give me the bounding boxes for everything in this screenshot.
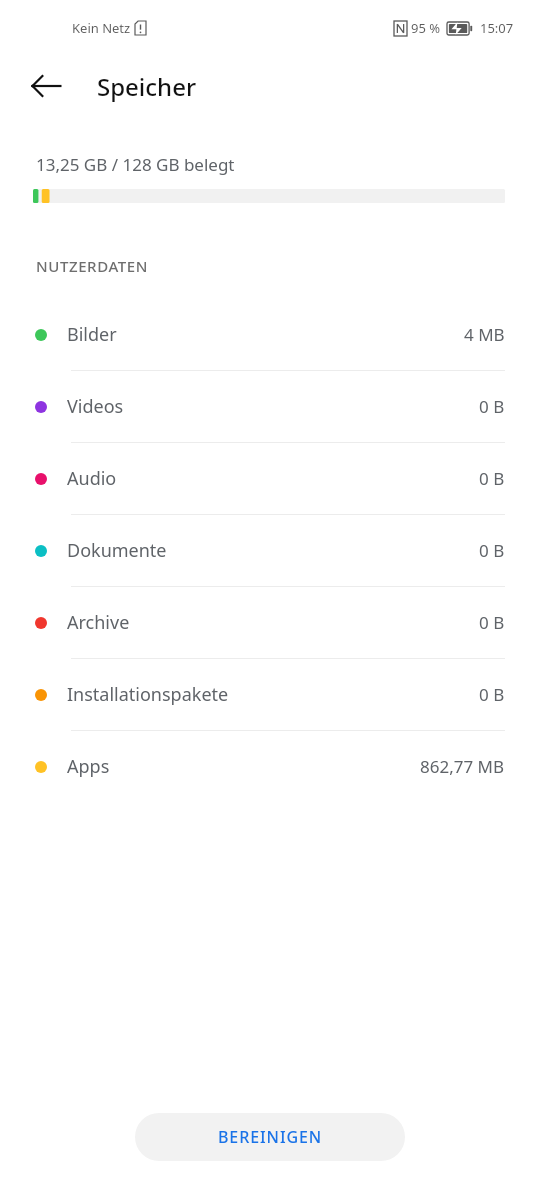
staticText: BEREINIGEN — [218, 1126, 323, 1148]
staticText: 0 B — [479, 395, 505, 418]
staticText: 862,77 MB — [420, 755, 505, 778]
staticText: Kein Netz — [72, 19, 131, 37]
staticText: Apps — [67, 754, 110, 779]
staticText: Bilder — [67, 322, 117, 347]
button[interactable]: Dokumente — [0, 515, 540, 587]
button[interactable]: Archive — [0, 587, 540, 659]
staticText: Installationspakete — [67, 682, 229, 707]
staticText: 0 B — [479, 467, 505, 490]
staticText: 4 MB — [464, 323, 505, 346]
staticText: NUTZERDATEN — [36, 256, 149, 276]
button[interactable]: Bilder — [0, 299, 540, 371]
staticText: Audio — [67, 466, 117, 491]
staticText: 15:07 — [480, 19, 514, 37]
staticText: Speicher — [97, 70, 197, 103]
button[interactable]: Installationspakete — [0, 659, 540, 731]
staticText: 0 B — [479, 539, 505, 562]
button[interactable]: Apps — [0, 731, 540, 803]
staticText: Archive — [67, 610, 130, 635]
staticText: 95 % — [411, 19, 441, 37]
staticText: Videos — [67, 394, 124, 419]
button[interactable]: Videos — [0, 371, 540, 443]
staticText: 13,25 GB / 128 GB belegt — [36, 153, 235, 176]
staticText: Dokumente — [67, 538, 167, 563]
staticText: 0 B — [479, 611, 505, 634]
button[interactable]: Audio — [0, 443, 540, 515]
button[interactable]: Back — [22, 62, 70, 110]
button[interactable]: BEREINIGEN — [135, 1113, 405, 1161]
staticText: 0 B — [479, 683, 505, 706]
